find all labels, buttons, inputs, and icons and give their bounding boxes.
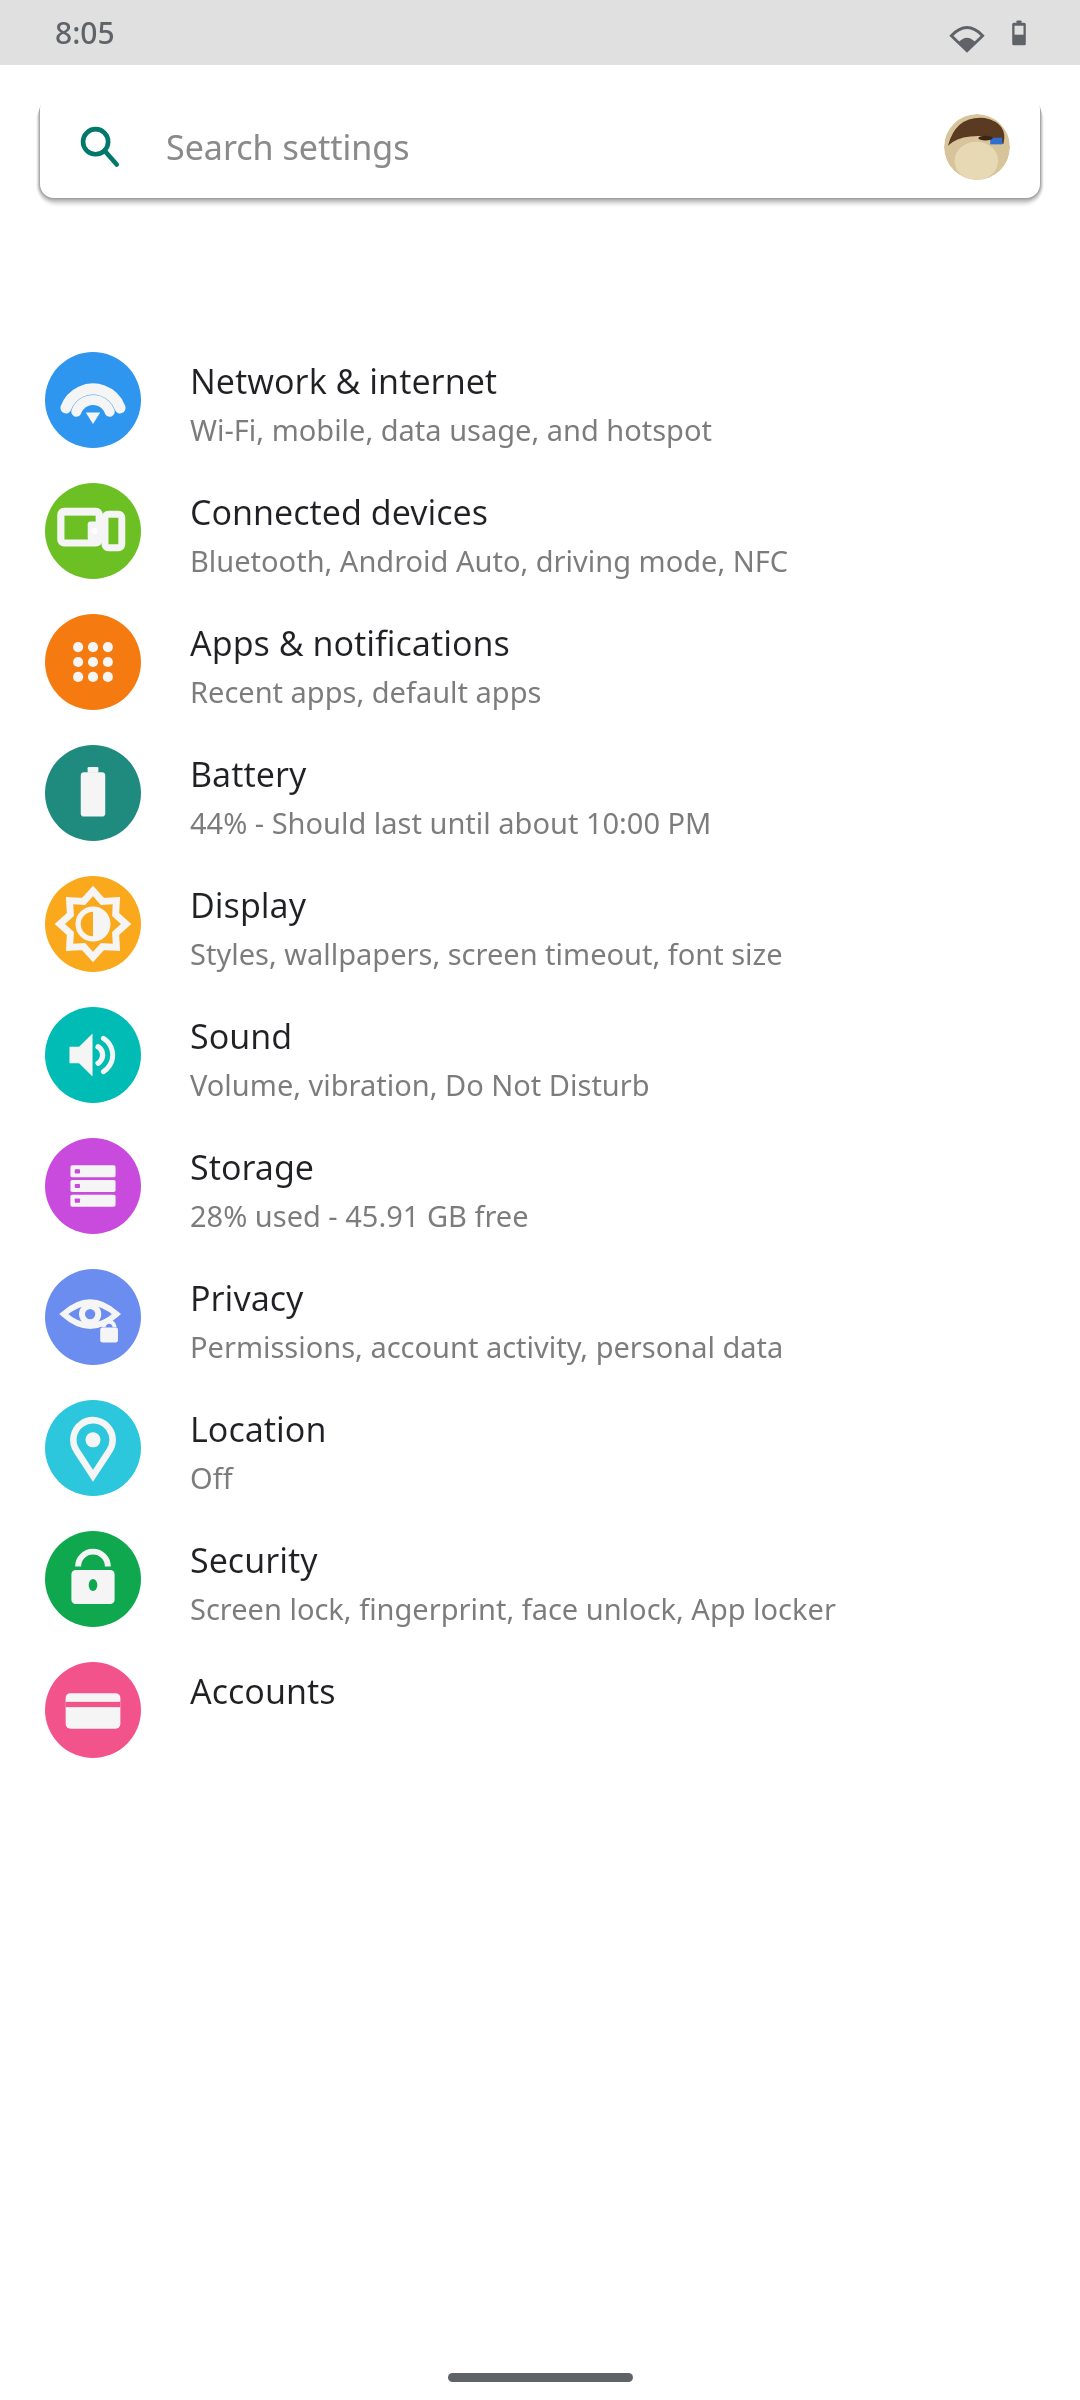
staticText: Display <box>190 882 306 928</box>
button[interactable]: Location <box>0 1400 1080 1531</box>
button[interactable]: Security <box>0 1531 1080 1662</box>
staticText: Network & internet <box>190 358 498 404</box>
button[interactable]: Privacy <box>0 1269 1080 1400</box>
button[interactable]: Search settings <box>40 95 1040 198</box>
button[interactable]: Accounts <box>0 1662 1080 1793</box>
button[interactable]: Display <box>0 876 1080 1007</box>
staticText: Off <box>190 1458 233 1497</box>
staticText: Recent apps, default apps <box>190 672 542 711</box>
button[interactable]: Storage <box>0 1138 1080 1269</box>
staticText: Sound <box>190 1013 293 1059</box>
staticText: Screen lock, fingerprint, face unlock, A… <box>190 1589 836 1628</box>
staticText: Accounts <box>190 1668 336 1714</box>
staticText: Privacy <box>190 1275 304 1321</box>
staticText: 28% used - 45.91 GB free <box>190 1196 529 1235</box>
button[interactable]: Apps & notifications <box>0 614 1080 745</box>
staticText: Apps & notifications <box>190 620 510 666</box>
staticText: Styles, wallpapers, screen timeout, font… <box>190 934 783 973</box>
button[interactable]: Network & internet <box>0 352 1080 483</box>
staticText: 44% - Should last until about 10:00 PM <box>190 803 712 842</box>
staticText: Battery <box>190 751 307 797</box>
staticText: 8:05 <box>55 12 115 53</box>
staticText: Permissions, account activity, personal … <box>190 1327 784 1366</box>
staticText: Wi-Fi, mobile, data usage, and hotspot <box>190 410 712 449</box>
staticText: Connected devices <box>190 489 489 535</box>
staticText: Search settings <box>166 124 410 170</box>
button[interactable]: Sound <box>0 1007 1080 1138</box>
button[interactable]: Account avatar <box>944 114 1010 180</box>
staticText: Volume, vibration, Do Not Disturb <box>190 1065 650 1104</box>
button[interactable]: Battery <box>0 745 1080 876</box>
staticText: Security <box>190 1537 318 1583</box>
button[interactable]: Connected devices <box>0 483 1080 614</box>
staticText: Bluetooth, Android Auto, driving mode, N… <box>190 541 789 580</box>
staticText: Storage <box>190 1144 315 1190</box>
staticText: Location <box>190 1406 327 1452</box>
